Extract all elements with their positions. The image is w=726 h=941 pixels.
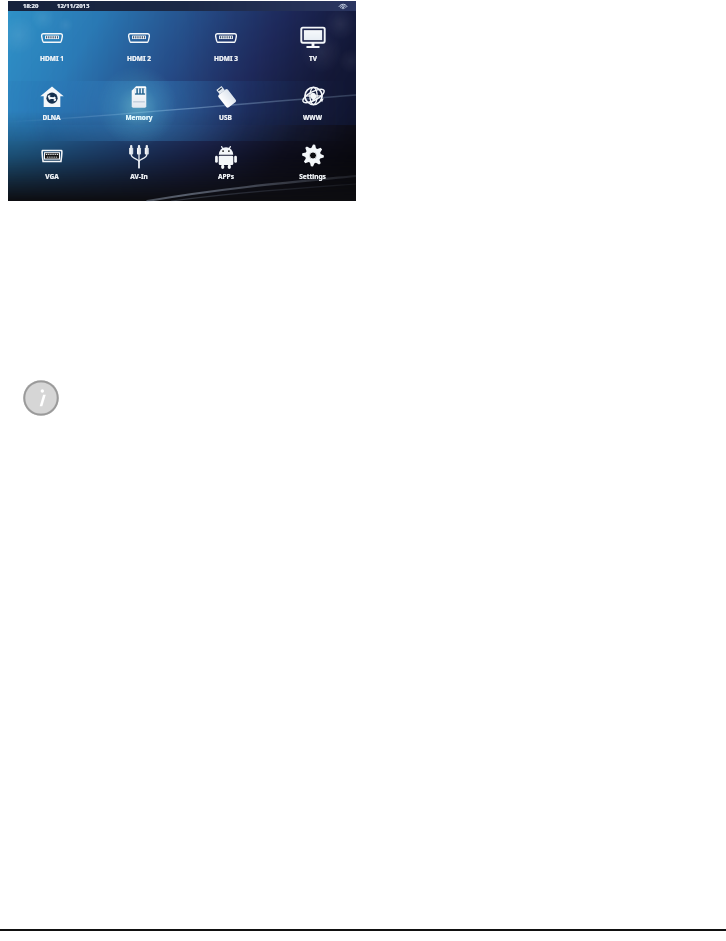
button[interactable]: VGA <box>8 132 95 191</box>
button[interactable]: AV-In <box>95 132 182 191</box>
staticText: VGA <box>45 172 59 181</box>
staticText: AV-In <box>130 172 148 181</box>
staticText: HDMI 2 <box>127 54 151 63</box>
staticText: Memory <box>125 113 153 122</box>
staticText: APPs <box>218 172 234 181</box>
button[interactable]: USB <box>182 73 269 132</box>
staticText: USB <box>219 113 232 122</box>
button[interactable]: Memory <box>95 73 182 132</box>
staticText: Settings <box>299 172 326 181</box>
button[interactable]: HDMI 1 <box>8 15 95 73</box>
staticText: HDMI 1 <box>40 54 64 63</box>
staticText: 12/11/2013 <box>57 2 90 10</box>
button[interactable]: DLNA <box>8 73 95 132</box>
button[interactable]: Information <box>22 379 60 417</box>
staticText: 18:20 <box>23 2 39 10</box>
button[interactable]: WWW <box>269 73 356 132</box>
staticText: WWW <box>303 113 322 122</box>
button[interactable]: TV <box>269 15 356 73</box>
button[interactable]: HDMI 3 <box>182 15 269 73</box>
staticText: HDMI 3 <box>214 54 238 63</box>
staticText: TV <box>309 54 317 63</box>
staticText: DLNA <box>42 113 61 122</box>
button[interactable]: Settings <box>269 132 356 191</box>
button[interactable]: APPs <box>182 132 269 191</box>
button[interactable]: HDMI 2 <box>95 15 182 73</box>
